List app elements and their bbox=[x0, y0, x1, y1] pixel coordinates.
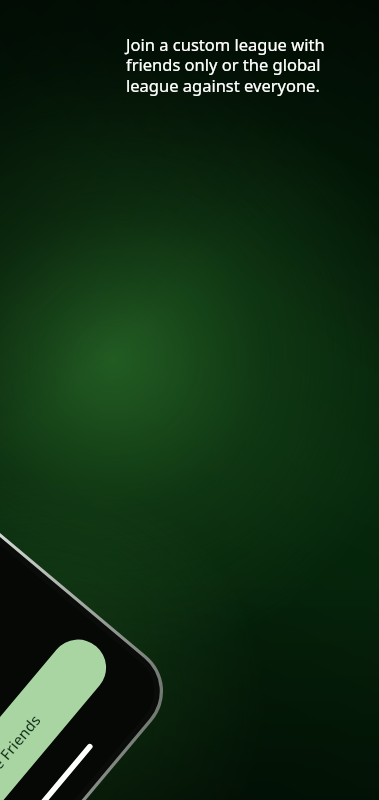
staticText: Join a custom league with friends only o… bbox=[126, 33, 367, 97]
button[interactable]: Invite Friends bbox=[20, 630, 175, 690]
